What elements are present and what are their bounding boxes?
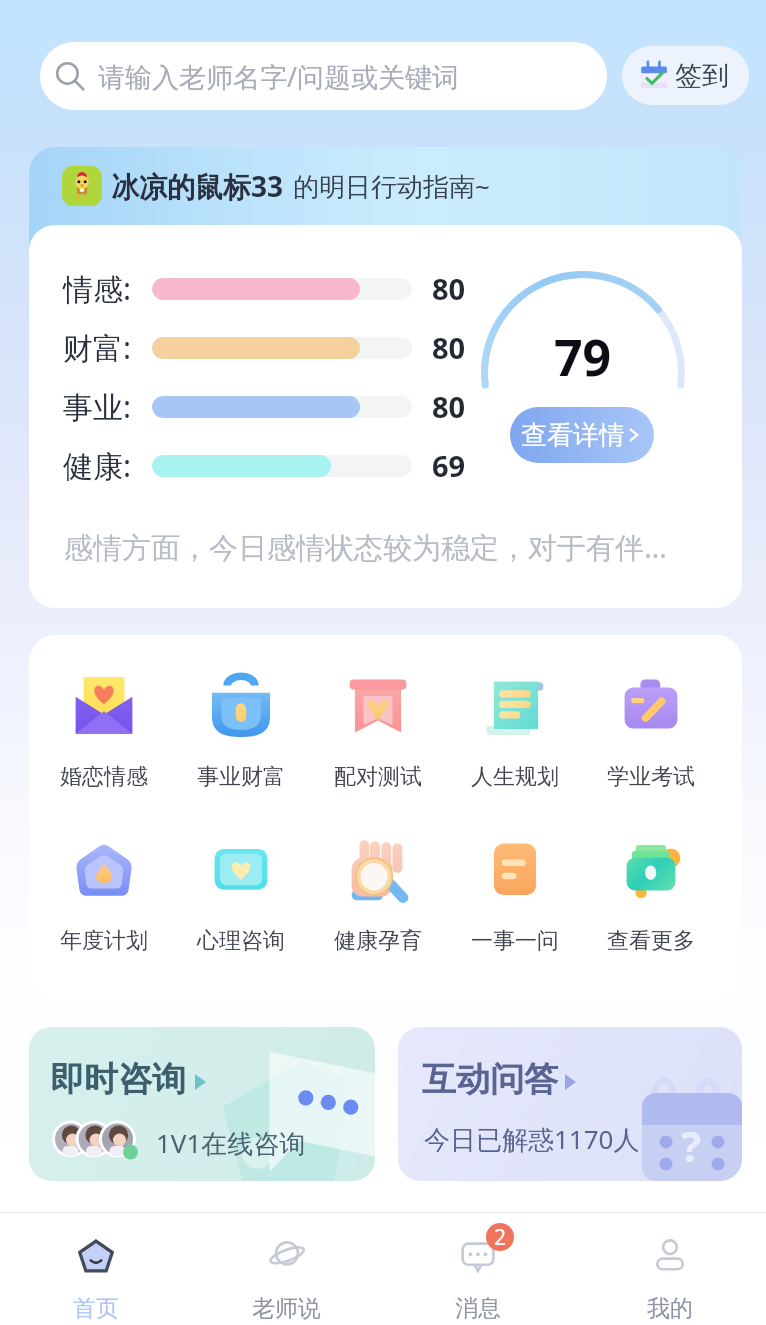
other: Home: [74, 1234, 118, 1278]
staticText: 婚恋情感: [60, 763, 148, 791]
staticText: 69: [432, 446, 466, 485]
other: Teacher says: [265, 1234, 309, 1278]
staticText: 80: [432, 269, 466, 308]
button[interactable]: 请输入老师名字/问题或关键词: [40, 42, 607, 110]
staticText: 冰凉的鼠标33: [111, 167, 284, 205]
staticText: 年度计划: [60, 927, 148, 955]
staticText: 感情方面，今日感情状态较为稳定，对于有伴…: [64, 527, 667, 567]
button[interactable]: 事业财富: [172, 673, 309, 791]
staticText: 80: [432, 387, 466, 426]
button[interactable]: 健康孕育: [309, 837, 446, 955]
staticText: 财富:: [63, 327, 132, 368]
staticText: 情感:: [63, 268, 132, 309]
staticText: 首页: [73, 1294, 119, 1323]
staticText: ?: [681, 1117, 702, 1174]
staticText: 健康孕育: [334, 927, 422, 955]
button[interactable]: 心理咨询: [172, 837, 309, 955]
staticText: 79: [554, 323, 612, 391]
other: Mine: [648, 1234, 692, 1278]
staticText: 请输入老师名字/问题或关键词: [98, 58, 460, 95]
staticText: 学业考试: [607, 763, 695, 791]
button[interactable]: 年度计划: [35, 837, 172, 955]
staticText: 健康:: [63, 445, 132, 486]
staticText: 今日已解惑1170人: [424, 1121, 640, 1157]
staticText: 签到: [675, 59, 729, 93]
staticText: 即时咨询: [50, 1058, 186, 1101]
button[interactable]: ?: [398, 1027, 742, 1181]
button[interactable]: 一事一问: [446, 837, 583, 955]
staticText: 一事一问: [471, 927, 559, 955]
button[interactable]: 配对测试: [309, 673, 446, 791]
staticText: 1V1在线咨询: [156, 1125, 306, 1161]
staticText: 互动问答: [422, 1058, 558, 1101]
button[interactable]: 学业考试: [583, 673, 719, 791]
staticText: 我的: [647, 1294, 693, 1323]
button[interactable]: 查看详情: [510, 407, 654, 463]
staticText: 查看更多: [607, 927, 695, 955]
staticText: 2: [494, 1223, 507, 1251]
button[interactable]: 签到: [622, 46, 749, 105]
staticText: 查看详情: [521, 419, 625, 452]
staticText: 消息: [455, 1294, 501, 1323]
button[interactable]: 婚恋情感: [35, 673, 172, 791]
button[interactable]: Mine: [574, 1213, 766, 1325]
button[interactable]: Teacher says: [191, 1213, 382, 1325]
staticText: 人生规划: [471, 763, 559, 791]
staticText: 的明日行动指南~: [293, 168, 490, 204]
staticText: 配对测试: [334, 763, 422, 791]
staticText: 老师说: [252, 1294, 321, 1323]
button[interactable]: 即时咨询: [29, 1027, 375, 1181]
other: Messages: [456, 1234, 500, 1278]
button[interactable]: 查看更多: [583, 837, 719, 955]
staticText: 80: [432, 328, 466, 367]
staticText: 事业财富: [197, 763, 285, 791]
button[interactable]: Home: [0, 1213, 191, 1325]
staticText: 心理咨询: [197, 927, 285, 955]
staticText: 事业:: [63, 386, 132, 427]
button[interactable]: 人生规划: [446, 673, 583, 791]
button[interactable]: Messages: [382, 1213, 574, 1325]
